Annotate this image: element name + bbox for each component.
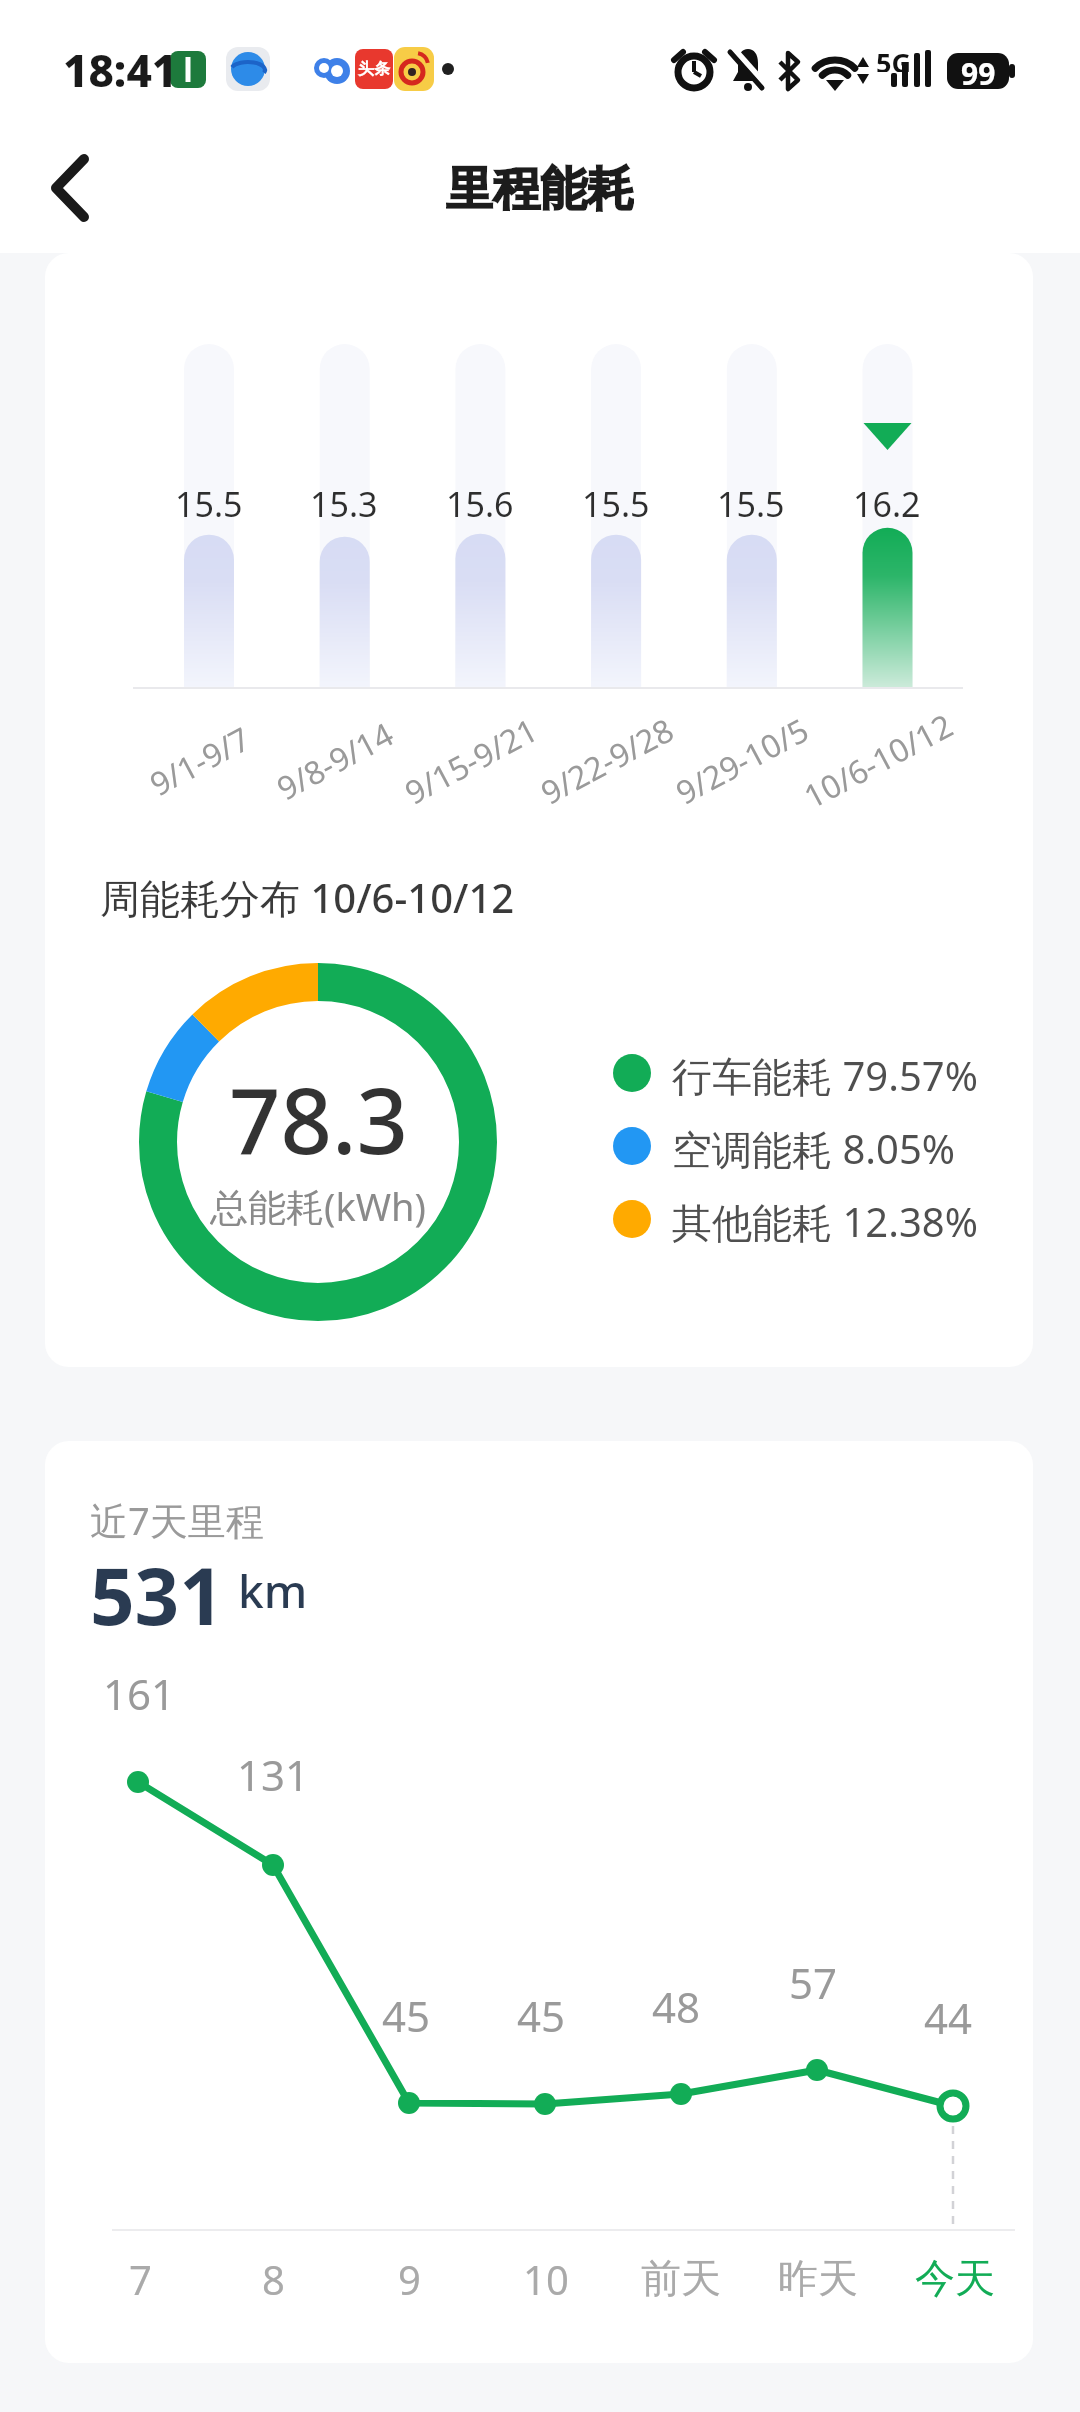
staticText: 531 [90,1542,224,1630]
staticText: 今天 [915,2253,995,2303]
staticText: 10 [523,2252,569,2304]
staticText: 57 [789,1954,838,2006]
staticText: 8 [262,2252,285,2304]
staticText: 5G [876,44,911,72]
staticText: 里程能耗 [446,160,634,218]
staticText: 99 [961,53,996,89]
button[interactable]: 前天 [611,2252,751,2304]
staticText: 总能耗(kWh) [210,1180,426,1230]
staticText: 161 [103,1665,176,1717]
staticText: 空调能耗 8.05% [672,1121,955,1171]
button[interactable]: 9 [339,2252,479,2304]
button[interactable] [821,344,953,688]
staticText: 近7天里程 [90,1494,264,1542]
staticText: 16.2 [853,481,921,527]
staticText: 9/15-9/21 [397,708,545,814]
button[interactable] [278,344,410,688]
staticText: 15.3 [310,481,378,527]
staticText: 前天 [641,2253,721,2303]
staticText: 9 [398,2252,421,2304]
staticText: 9/22-9/28 [533,708,681,814]
staticText: 15.5 [175,481,243,527]
staticText: 15.5 [717,481,785,527]
button[interactable] [685,344,817,688]
staticText: 9/8-9/14 [269,712,401,810]
button[interactable] [40,145,110,231]
staticText: 15.6 [446,481,514,527]
staticText: 78.3 [229,1058,408,1168]
staticText: 其他能耗 12.38% [672,1194,978,1244]
button[interactable]: 8 [203,2252,343,2304]
staticText: 头条 [358,59,390,79]
staticText: 45 [517,1987,566,2039]
staticText: 周能耗分布 10/6-10/12 [100,870,515,920]
button[interactable]: 10 [476,2252,616,2304]
staticText: 45 [382,1987,431,2039]
staticText: 131 [237,1746,310,1798]
staticText: 10/6-10/12 [796,703,961,818]
staticText: 15.5 [582,481,650,527]
staticText: 18:41 [63,40,178,96]
staticText: km [238,1559,308,1622]
staticText: 9/1-9/7 [142,716,258,806]
button[interactable]: 7 [70,2252,210,2304]
staticText: 9/29-10/5 [668,708,816,814]
staticText: 昨天 [778,2253,858,2303]
button[interactable] [550,344,682,688]
button[interactable]: 今天 [885,2252,1025,2304]
staticText: 44 [924,1989,973,2041]
staticText: 7 [129,2252,152,2304]
button[interactable] [143,344,275,688]
staticText: 48 [652,1978,701,2030]
button[interactable] [414,344,546,688]
button[interactable]: 昨天 [748,2252,888,2304]
staticText: 行车能耗 79.57% [672,1048,978,1098]
